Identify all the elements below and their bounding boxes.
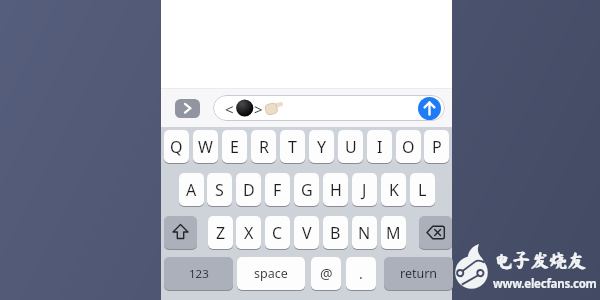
button[interactable]: Q	[164, 130, 189, 163]
staticText: L	[418, 179, 427, 201]
staticText: Y	[317, 136, 327, 158]
staticText: Q	[170, 136, 183, 158]
staticText: S	[215, 179, 224, 201]
button[interactable]: C	[265, 216, 290, 249]
button[interactable]: 123	[164, 257, 233, 290]
staticText: F	[273, 179, 282, 201]
button[interactable]: B	[323, 216, 348, 249]
button[interactable]	[175, 99, 200, 118]
staticText: P	[432, 136, 442, 158]
button[interactable]: D	[236, 173, 261, 206]
button[interactable]: S	[207, 173, 232, 206]
staticText: C	[272, 222, 283, 244]
button[interactable]: U	[338, 130, 363, 163]
button[interactable]: M	[381, 216, 406, 249]
button[interactable]: F	[265, 173, 290, 206]
button[interactable]: .	[346, 257, 376, 290]
staticText: R	[259, 136, 269, 158]
staticText: M	[386, 222, 401, 244]
staticText: .	[359, 264, 363, 283]
button[interactable]: E	[222, 130, 247, 163]
button[interactable]: Z	[208, 216, 233, 249]
button[interactable]	[164, 216, 197, 249]
staticText: B	[330, 222, 341, 244]
button[interactable]: H	[323, 173, 348, 206]
button[interactable]: T	[280, 130, 305, 163]
staticText: <	[225, 99, 234, 119]
staticText: K	[389, 179, 399, 201]
staticText: >	[254, 99, 263, 119]
staticText: @	[320, 264, 333, 283]
staticText: U	[345, 136, 357, 158]
staticText: space	[254, 265, 288, 282]
button[interactable]: V	[294, 216, 319, 249]
staticText: T	[288, 136, 297, 158]
staticText: D	[243, 179, 255, 201]
staticText: 电子发烧友	[494, 251, 587, 270]
staticText: X	[244, 222, 254, 244]
staticText: V	[302, 222, 312, 244]
button[interactable]: W	[193, 130, 218, 163]
button[interactable]: X	[236, 216, 261, 249]
button[interactable]: L	[410, 173, 435, 206]
button[interactable]: return	[384, 257, 453, 290]
button[interactable]: @	[311, 257, 341, 290]
button[interactable]: N	[352, 216, 377, 249]
staticText: www.elecfans.com	[493, 276, 597, 292]
staticText: N	[358, 222, 371, 244]
staticText: I	[377, 136, 383, 158]
staticText: H	[330, 179, 342, 201]
staticText: 123	[189, 266, 209, 282]
staticText: A	[186, 179, 197, 201]
staticText: O	[402, 136, 415, 158]
button[interactable]: Y	[309, 130, 334, 163]
button[interactable]	[418, 97, 441, 120]
button[interactable]: I	[367, 130, 392, 163]
staticText: W	[198, 136, 213, 158]
button[interactable]: R	[251, 130, 276, 163]
staticText: G	[301, 179, 313, 201]
staticText: E	[230, 136, 239, 158]
button[interactable]: J	[352, 173, 377, 206]
staticText: 电子发烧友	[493, 251, 586, 270]
button[interactable]: A	[179, 173, 204, 206]
staticText: J	[362, 179, 367, 201]
button[interactable]: space	[237, 257, 305, 290]
button[interactable]: K	[381, 173, 406, 206]
button[interactable]: P	[424, 130, 449, 163]
button[interactable]	[419, 216, 452, 249]
staticText: return	[400, 265, 438, 282]
button[interactable]: G	[294, 173, 319, 206]
button[interactable]: O	[396, 130, 421, 163]
staticText: Z	[216, 222, 226, 244]
button[interactable]	[213, 95, 445, 121]
